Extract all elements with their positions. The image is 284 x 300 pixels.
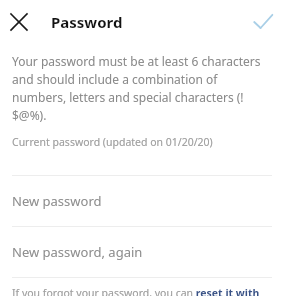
staticText: If you forgot your password, you can res… <box>12 286 278 296</box>
button[interactable]: Close <box>5 8 33 36</box>
button[interactable]: Save password <box>248 7 278 37</box>
staticText: Password <box>51 12 123 32</box>
staticText: Your password must be at least 6 charact… <box>12 53 274 123</box>
button[interactable]: If you forgot your password, you can res… <box>0 284 284 300</box>
staticText: New password <box>12 192 102 210</box>
button[interactable]: New password <box>0 176 284 226</box>
staticText: Current password (updated on 01/20/20) <box>12 135 213 149</box>
staticText: New password, again <box>12 243 143 261</box>
button[interactable]: New password, again <box>0 227 284 277</box>
